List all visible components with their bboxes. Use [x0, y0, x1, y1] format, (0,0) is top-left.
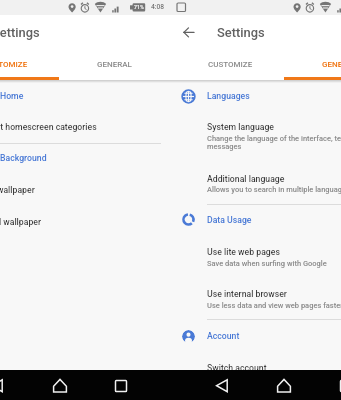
button[interactable]: [172, 240, 341, 267]
staticText: Home: [0, 91, 24, 101]
button[interactable]: Recent apps: [335, 374, 341, 396]
staticText: 4:08: [151, 3, 165, 11]
button[interactable]: [0, 144, 172, 170]
button[interactable]: [59, 56, 171, 79]
button[interactable]: [172, 115, 341, 151]
button[interactable]: [0, 56, 59, 79]
button[interactable]: Home: [273, 374, 295, 396]
staticText: Use lite web pages: [207, 247, 280, 257]
staticText: Settings: [0, 25, 40, 40]
button[interactable]: [0, 210, 172, 227]
staticText: System language: [207, 122, 275, 132]
staticText: Live wallpaper: [0, 185, 35, 195]
staticText: Change the language of the interface, te…: [207, 134, 341, 143]
button[interactable]: [284, 56, 341, 79]
staticText: GENERAL: [97, 60, 132, 69]
button[interactable]: [0, 115, 172, 132]
staticText: CUSTOMIZE: [208, 60, 253, 69]
staticText: Save data when surfing with Google: [207, 259, 327, 268]
staticText: CUSTOMIZE: [0, 60, 28, 69]
staticText: messages: [207, 142, 242, 151]
button[interactable]: Back: [178, 21, 200, 43]
button[interactable]: [172, 206, 341, 232]
staticText: Data Usage: [207, 215, 252, 225]
staticText: Use less data and view web pages faster: [207, 301, 341, 310]
button[interactable]: Back: [0, 374, 8, 396]
staticText: Switch account: [207, 363, 267, 373]
staticText: Background: [0, 153, 47, 163]
staticText: Languages: [207, 91, 250, 101]
button[interactable]: Back: [211, 374, 233, 396]
button[interactable]: [172, 282, 341, 309]
button[interactable]: Home: [49, 374, 71, 396]
staticText: Additional language: [207, 174, 285, 184]
button[interactable]: [0, 82, 172, 108]
staticText: Select homescreen categories: [0, 122, 97, 132]
staticText: 71%: [134, 4, 144, 10]
button[interactable]: [172, 56, 284, 79]
button[interactable]: [172, 356, 341, 373]
staticText: GENERAL: [322, 60, 341, 69]
staticText: Allows you to search in multiple languag…: [207, 185, 341, 194]
button[interactable]: [172, 82, 341, 108]
staticText: Account: [207, 331, 240, 341]
staticText: Settings: [217, 25, 265, 40]
button[interactable]: [172, 166, 341, 193]
button[interactable]: Recent apps: [110, 374, 132, 396]
staticText: Scroll wallpaper: [0, 217, 42, 227]
staticText: Use internal browser: [207, 289, 287, 299]
button[interactable]: [0, 178, 172, 195]
button[interactable]: [172, 322, 341, 348]
